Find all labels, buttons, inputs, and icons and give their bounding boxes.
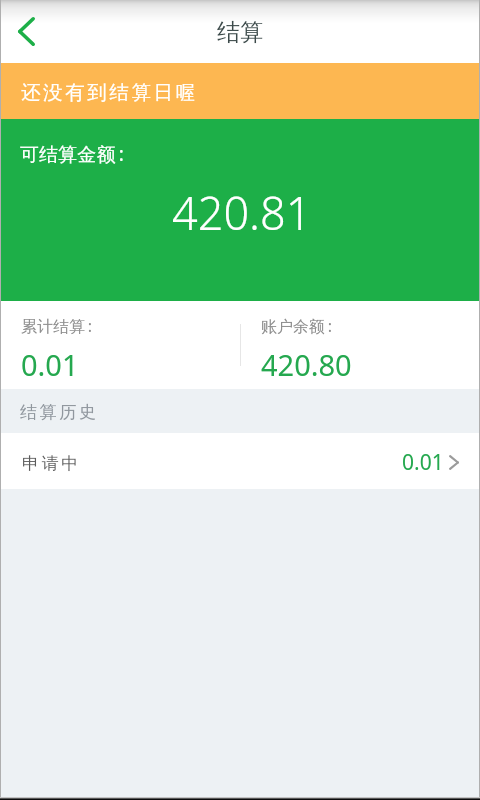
staticText: 账户余额 :	[261, 315, 332, 337]
staticText: 结算历史	[20, 402, 99, 423]
button[interactable]: 申请中	[0, 433, 480, 489]
staticText: 累计结算 :	[21, 315, 92, 337]
staticText: 420.80	[261, 345, 352, 384]
staticText: 420.81	[172, 182, 312, 243]
staticText: 申请中	[22, 453, 81, 474]
staticText: 结算	[217, 18, 263, 47]
staticText: 0.01	[21, 345, 79, 384]
staticText: 还没有到结算日喔	[21, 80, 198, 105]
staticText: 可结算金额 :	[20, 141, 124, 167]
staticText: 0.01	[402, 448, 444, 477]
button[interactable]: Back	[0, 6, 52, 58]
